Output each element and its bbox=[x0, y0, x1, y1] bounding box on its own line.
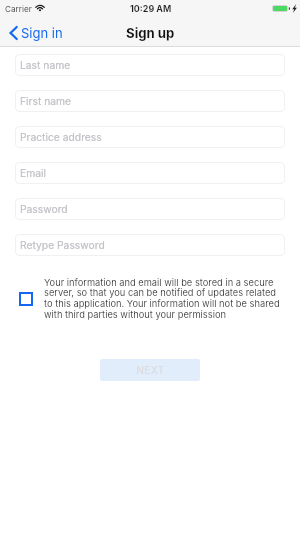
button[interactable]: Email bbox=[15, 162, 285, 184]
button[interactable]: Retype Password bbox=[15, 234, 285, 256]
staticText: Practice address bbox=[20, 131, 102, 143]
staticText: Sign in bbox=[21, 25, 63, 41]
staticText: Sign up bbox=[126, 25, 175, 41]
staticText: 10:29 AM bbox=[130, 3, 172, 14]
staticText: First name bbox=[20, 95, 72, 107]
staticText: Your information and email will be store… bbox=[44, 277, 284, 321]
staticText: NEXT bbox=[136, 364, 165, 376]
button[interactable]: Agree to terms checkbox bbox=[19, 292, 33, 306]
staticText: Retype Password bbox=[20, 239, 105, 251]
button[interactable]: First name bbox=[15, 90, 285, 112]
button[interactable]: NEXT bbox=[100, 359, 200, 381]
staticText: Last name bbox=[20, 59, 71, 71]
staticText: Carrier bbox=[5, 4, 32, 14]
button[interactable]: Password bbox=[15, 198, 285, 220]
button[interactable]: Practice address bbox=[15, 126, 285, 148]
staticText: Password bbox=[20, 203, 68, 215]
staticText: Email bbox=[20, 167, 46, 179]
button[interactable]: Sign in bbox=[0, 21, 71, 45]
button[interactable]: Last name bbox=[15, 54, 285, 76]
